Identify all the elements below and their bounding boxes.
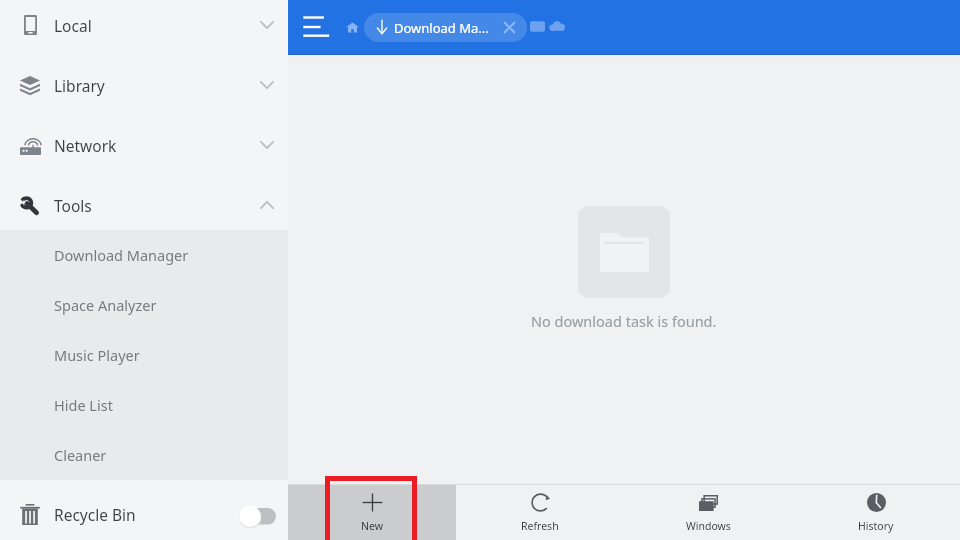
button[interactable]: Music Player: [0, 330, 288, 380]
staticText: Library: [54, 75, 105, 96]
button[interactable]: Recycle Bin toggle: [227, 499, 275, 531]
button[interactable]: New: [288, 485, 456, 540]
button[interactable]: Hide List: [0, 380, 288, 430]
staticText: Music Player: [54, 345, 140, 365]
button[interactable]: History: [792, 485, 960, 540]
staticText: Tools: [54, 195, 92, 216]
staticText: Space Analyzer: [54, 295, 157, 315]
staticText: Download Manager: [54, 245, 189, 265]
button[interactable]: Home: [336, 11, 369, 44]
button[interactable]: Space Analyzer: [0, 280, 288, 330]
staticText: History: [858, 519, 894, 533]
button[interactable]: Cloud: [545, 14, 569, 38]
button[interactable]: Library: [0, 55, 288, 115]
staticText: New: [361, 519, 383, 533]
staticText: Download Ma...: [394, 19, 489, 37]
button[interactable]: Close tab: [497, 13, 521, 42]
button[interactable]: Windows: [624, 485, 792, 540]
button[interactable]: Local: [0, 0, 288, 55]
button[interactable]: Download Ma...: [364, 13, 527, 42]
button[interactable]: Tabs: [525, 14, 549, 38]
button[interactable]: Download Manager: [0, 230, 288, 280]
staticText: Local: [54, 15, 92, 36]
staticText: Cleaner: [54, 445, 107, 465]
button[interactable]: Refresh: [456, 485, 624, 540]
button[interactable]: Network: [0, 115, 288, 175]
staticText: Network: [54, 135, 117, 156]
staticText: Recycle Bin: [54, 504, 136, 525]
button[interactable]: Tools: [0, 175, 288, 235]
staticText: Windows: [686, 519, 731, 533]
staticText: Refresh: [521, 519, 559, 533]
staticText: Hide List: [54, 395, 113, 415]
button[interactable]: Recycle Bin: [0, 487, 288, 540]
button[interactable]: Cleaner: [0, 430, 288, 480]
button[interactable]: Menu: [295, 6, 337, 48]
staticText: No download task is found.: [531, 311, 717, 331]
